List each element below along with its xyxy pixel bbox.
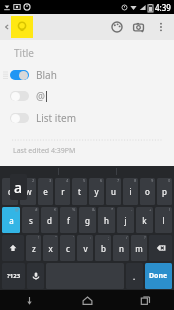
staticText: 8 xyxy=(134,178,137,183)
staticText: Last edited 4:39PM xyxy=(13,146,76,156)
staticText: * xyxy=(111,207,114,212)
staticText: r xyxy=(61,186,65,197)
staticText: " xyxy=(55,235,57,240)
button[interactable]: r xyxy=(55,178,70,205)
button[interactable]: Recents xyxy=(116,290,174,310)
button[interactable]: u xyxy=(106,178,121,205)
staticText: z xyxy=(32,243,36,254)
button[interactable]: Change color xyxy=(106,14,128,40)
staticText: 3 xyxy=(49,178,52,183)
button[interactable]: d xyxy=(41,207,58,233)
staticText: 6 xyxy=(100,178,103,183)
button[interactable]: Hide keyboard xyxy=(0,290,58,310)
button[interactable]: c xyxy=(60,235,75,261)
staticText: List item xyxy=(36,111,76,125)
other: Checked xyxy=(10,70,29,80)
button[interactable]: y xyxy=(89,178,104,205)
button[interactable]: Shift xyxy=(2,235,24,261)
staticText: f xyxy=(67,215,70,226)
staticText: h xyxy=(104,215,109,226)
button[interactable]: n xyxy=(113,235,129,261)
staticText: ?123 xyxy=(7,272,21,280)
button[interactable]: Backspace xyxy=(149,235,172,261)
other: Unchecked xyxy=(10,113,29,123)
staticText: 4:39 xyxy=(155,2,171,13)
staticText: ! xyxy=(38,235,40,240)
button[interactable]: . xyxy=(126,263,143,289)
other: Unchecked xyxy=(10,91,29,101)
staticText: u xyxy=(111,186,116,197)
button[interactable]: s xyxy=(22,207,39,233)
button[interactable]: t xyxy=(72,178,87,205)
button[interactable]: Home xyxy=(58,290,116,310)
button[interactable]: m xyxy=(131,235,147,261)
staticText: / xyxy=(126,235,128,240)
button[interactable]: o xyxy=(140,178,155,205)
button[interactable]: Done xyxy=(145,263,172,289)
staticText: ' xyxy=(73,235,74,240)
button[interactable]: l xyxy=(155,207,172,233)
staticText: & xyxy=(92,207,95,212)
staticText: i xyxy=(129,186,132,197)
button[interactable]: ?123 xyxy=(2,263,25,289)
button[interactable]: v xyxy=(77,235,93,261)
staticText: ( xyxy=(169,207,171,212)
staticText: - xyxy=(131,207,133,212)
staticText: € xyxy=(54,207,57,212)
button[interactable]: p xyxy=(157,178,172,205)
staticText: a xyxy=(9,215,14,226)
staticText: Title xyxy=(14,46,34,60)
staticText: q xyxy=(8,186,13,197)
button[interactable]: Voice input xyxy=(27,263,44,289)
staticText: v xyxy=(83,243,88,254)
staticText: 7 xyxy=(117,178,120,183)
button[interactable]: b xyxy=(95,235,111,261)
button[interactable]: a xyxy=(2,207,20,233)
button[interactable]: x xyxy=(43,235,58,261)
staticText: p xyxy=(162,186,167,197)
button[interactable]: g xyxy=(79,207,96,233)
button[interactable]: i xyxy=(123,178,138,205)
staticText: # xyxy=(35,207,38,212)
staticText: ? xyxy=(144,235,146,240)
staticText: m xyxy=(135,243,143,254)
button[interactable]: Note color xyxy=(11,16,33,38)
staticText: g xyxy=(85,215,90,226)
button[interactable]: e xyxy=(38,178,53,205)
button[interactable]: q xyxy=(2,178,18,205)
button[interactable]: z xyxy=(26,235,41,261)
button[interactable]: Unchecked xyxy=(0,110,174,126)
staticText: d xyxy=(47,215,52,226)
button[interactable]: k xyxy=(136,207,153,233)
button[interactable]: w xyxy=(20,178,36,205)
button[interactable]: h xyxy=(98,207,115,233)
button[interactable]: More options xyxy=(150,14,172,40)
button[interactable]: Checked xyxy=(0,67,174,83)
staticText: % xyxy=(72,207,76,212)
button[interactable]: f xyxy=(60,207,77,233)
staticText: e xyxy=(43,186,48,197)
button[interactable]: Add photo xyxy=(128,14,150,40)
staticText: c xyxy=(66,243,70,254)
staticText: o xyxy=(145,186,150,197)
staticText: 4 xyxy=(66,178,69,183)
staticText: s xyxy=(29,215,33,226)
button[interactable]: Navigate up xyxy=(2,15,11,39)
button[interactable]: j xyxy=(117,207,134,233)
staticText: Done xyxy=(149,271,168,281)
staticText: . xyxy=(133,271,136,282)
staticText: ; xyxy=(108,235,110,240)
staticText: @ xyxy=(36,89,45,103)
staticText: 9 xyxy=(151,178,154,183)
button[interactable]: Unchecked xyxy=(0,88,174,104)
staticText: 0 xyxy=(168,178,171,183)
staticText: y xyxy=(94,186,99,197)
staticText: a xyxy=(14,178,23,197)
staticText: @ xyxy=(15,207,19,212)
staticText: Blah xyxy=(36,68,57,82)
